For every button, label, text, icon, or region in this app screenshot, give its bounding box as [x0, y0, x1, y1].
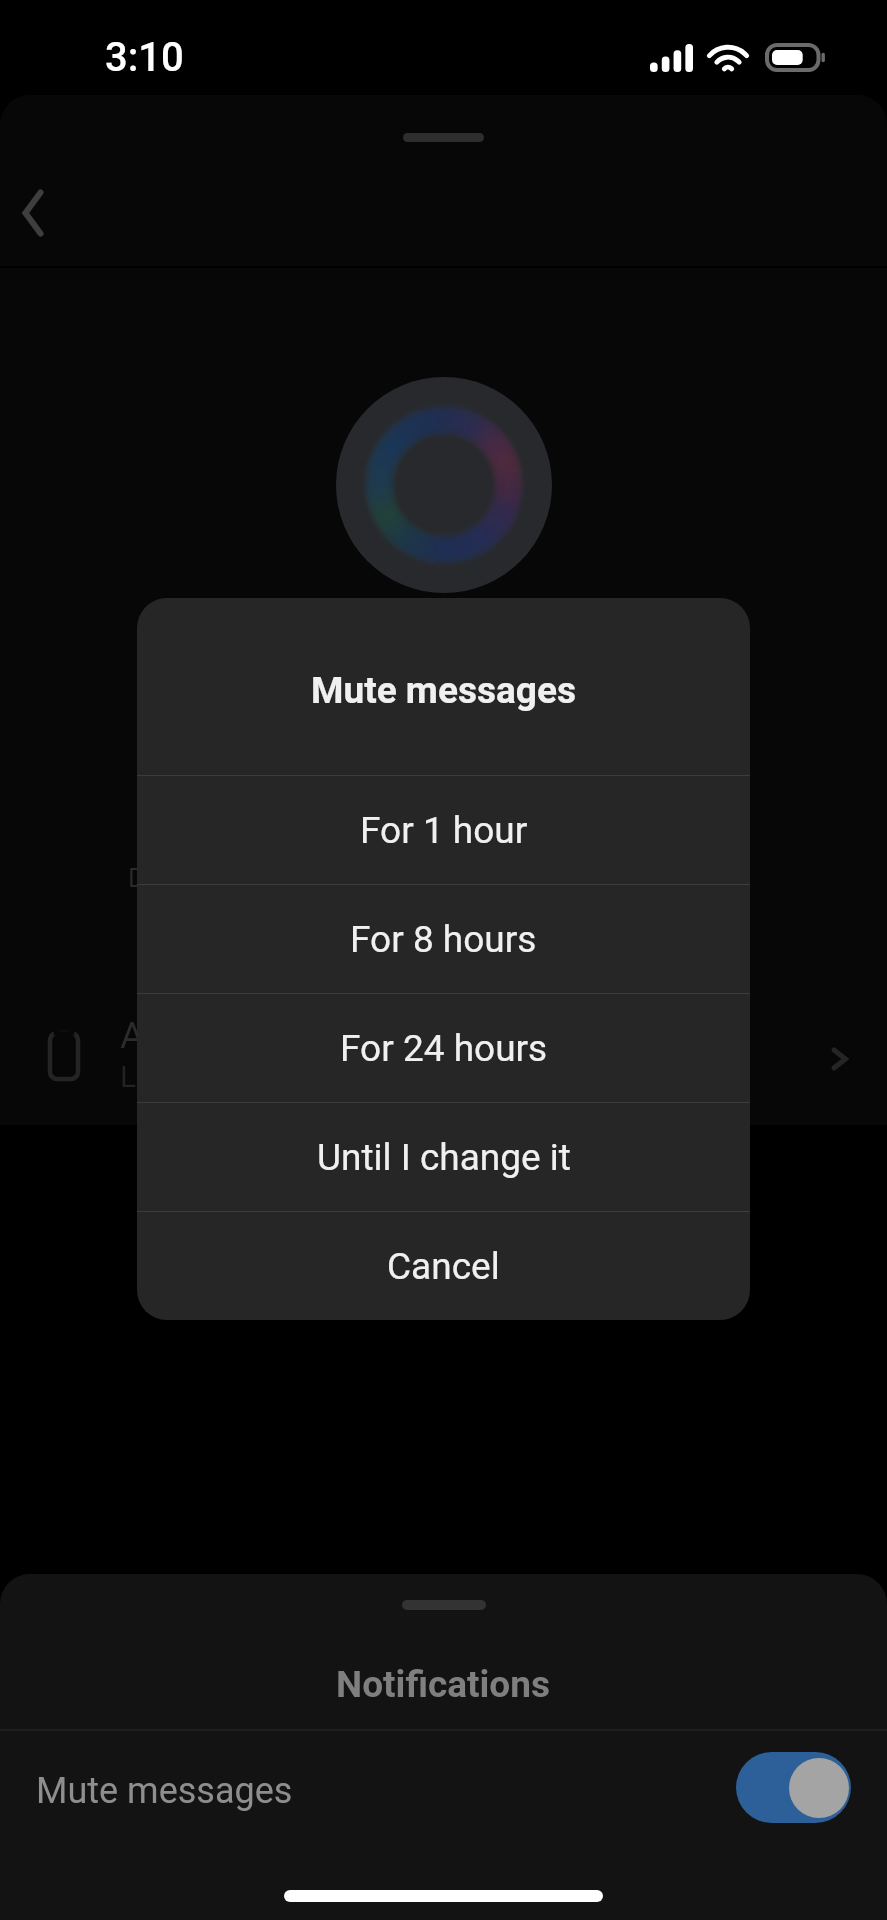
- button[interactable]: Mute messages: [0, 1731, 887, 1843]
- staticText: For 1 hour: [360, 809, 528, 852]
- button[interactable]: Android phone: [0, 956, 887, 1156]
- staticText: Cancel: [387, 1245, 500, 1288]
- button[interactable]: For 24 hours: [137, 994, 750, 1102]
- staticText: Until I change it: [317, 1136, 571, 1179]
- button[interactable]: Back: [0, 180, 66, 246]
- staticText: Mute messages: [311, 669, 576, 712]
- button[interactable]: Cancel: [137, 1212, 750, 1320]
- staticText: Devices: [128, 863, 219, 893]
- staticText: 3:10: [105, 34, 184, 81]
- button[interactable]: For 1 hour: [137, 776, 750, 884]
- staticText: Mute messages: [36, 1770, 293, 1812]
- staticText: For 8 hours: [350, 918, 537, 961]
- button[interactable]: For 8 hours: [137, 885, 750, 993]
- button[interactable]: Until I change it: [137, 1103, 750, 1211]
- staticText: Last active now: [120, 1059, 329, 1094]
- staticText: For 24 hours: [340, 1027, 548, 1070]
- staticText: Android phone: [120, 1014, 361, 1057]
- staticText: Notifications: [336, 1663, 551, 1706]
